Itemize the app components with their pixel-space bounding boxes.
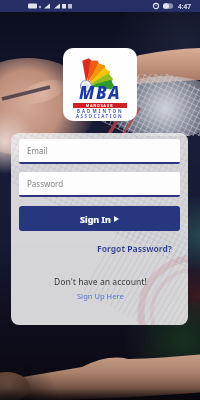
staticText: ASSOCIATION bbox=[76, 113, 124, 119]
button[interactable]: Sign Up Here bbox=[60, 289, 140, 302]
button[interactable]: Email bbox=[19, 139, 180, 164]
staticText: Password bbox=[27, 178, 64, 189]
staticText: Sign Up Here bbox=[77, 291, 124, 301]
staticText: MBA bbox=[79, 81, 122, 104]
staticText: Don't have an account! bbox=[54, 276, 147, 288]
staticText: BADMINTON bbox=[77, 108, 124, 114]
button[interactable]: Password bbox=[19, 172, 180, 197]
staticText: Sign In bbox=[80, 213, 111, 225]
staticText: Forgot Password? bbox=[97, 243, 172, 255]
button[interactable]: Sign In bbox=[19, 206, 180, 231]
button[interactable]: Forgot Password? bbox=[77, 242, 172, 256]
staticText: MANDSAUR bbox=[86, 103, 114, 108]
staticText: 4:47 bbox=[178, 2, 191, 11]
staticText: Email bbox=[27, 145, 48, 156]
